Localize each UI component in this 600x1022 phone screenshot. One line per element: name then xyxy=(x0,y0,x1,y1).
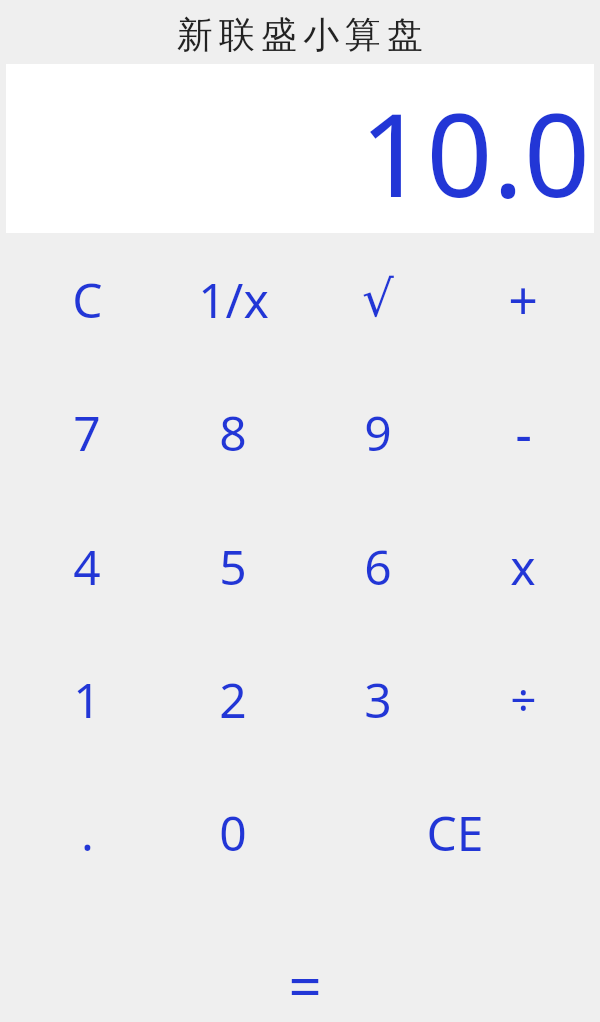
staticText: 9 xyxy=(364,400,392,465)
staticText: . xyxy=(81,800,94,865)
staticText: 5 xyxy=(219,534,247,599)
button[interactable]: 0 xyxy=(163,772,303,892)
staticText: x xyxy=(510,534,536,599)
button[interactable]: Decimal point xyxy=(17,772,157,892)
staticText: 6 xyxy=(364,534,392,599)
button[interactable]: 6 xyxy=(308,506,448,626)
button[interactable]: 3 xyxy=(308,639,448,759)
staticText: 8 xyxy=(219,400,247,465)
staticText: 7 xyxy=(73,400,101,465)
staticText: = xyxy=(288,946,322,1022)
staticText: 2 xyxy=(219,667,247,732)
staticText: 3 xyxy=(364,667,392,732)
staticText: 1 xyxy=(73,667,101,732)
staticText: 10.0 xyxy=(359,73,590,231)
staticText: C xyxy=(72,267,103,332)
button[interactable]: Equals xyxy=(240,938,370,1022)
button[interactable]: 9 xyxy=(308,372,448,492)
staticText: √ xyxy=(362,270,394,328)
button[interactable]: Divide xyxy=(453,639,593,759)
staticText: - xyxy=(515,397,532,468)
button[interactable]: 5 xyxy=(163,506,303,626)
staticText: CE xyxy=(426,800,484,865)
button[interactable]: Reciprocal xyxy=(163,239,303,359)
button[interactable]: 2 xyxy=(163,639,303,759)
button[interactable]: Clear xyxy=(17,239,157,359)
staticText: 4 xyxy=(73,534,101,599)
button[interactable]: Clear entry xyxy=(375,772,535,892)
button[interactable]: Multiply xyxy=(453,506,593,626)
button[interactable]: 10.0 xyxy=(6,64,594,233)
staticText: 1/x xyxy=(198,267,269,332)
button[interactable]: Plus xyxy=(453,239,593,359)
button[interactable]: Square root xyxy=(308,239,448,359)
staticText: 新联盛小算盘 xyxy=(174,12,426,57)
button[interactable]: Minus xyxy=(453,372,593,492)
button[interactable]: 7 xyxy=(17,372,157,492)
staticText: ÷ xyxy=(510,668,537,731)
button[interactable]: 8 xyxy=(163,372,303,492)
button[interactable]: 4 xyxy=(17,506,157,626)
button[interactable]: 1 xyxy=(17,639,157,759)
staticText: 0 xyxy=(219,800,247,865)
staticText: + xyxy=(508,264,538,335)
